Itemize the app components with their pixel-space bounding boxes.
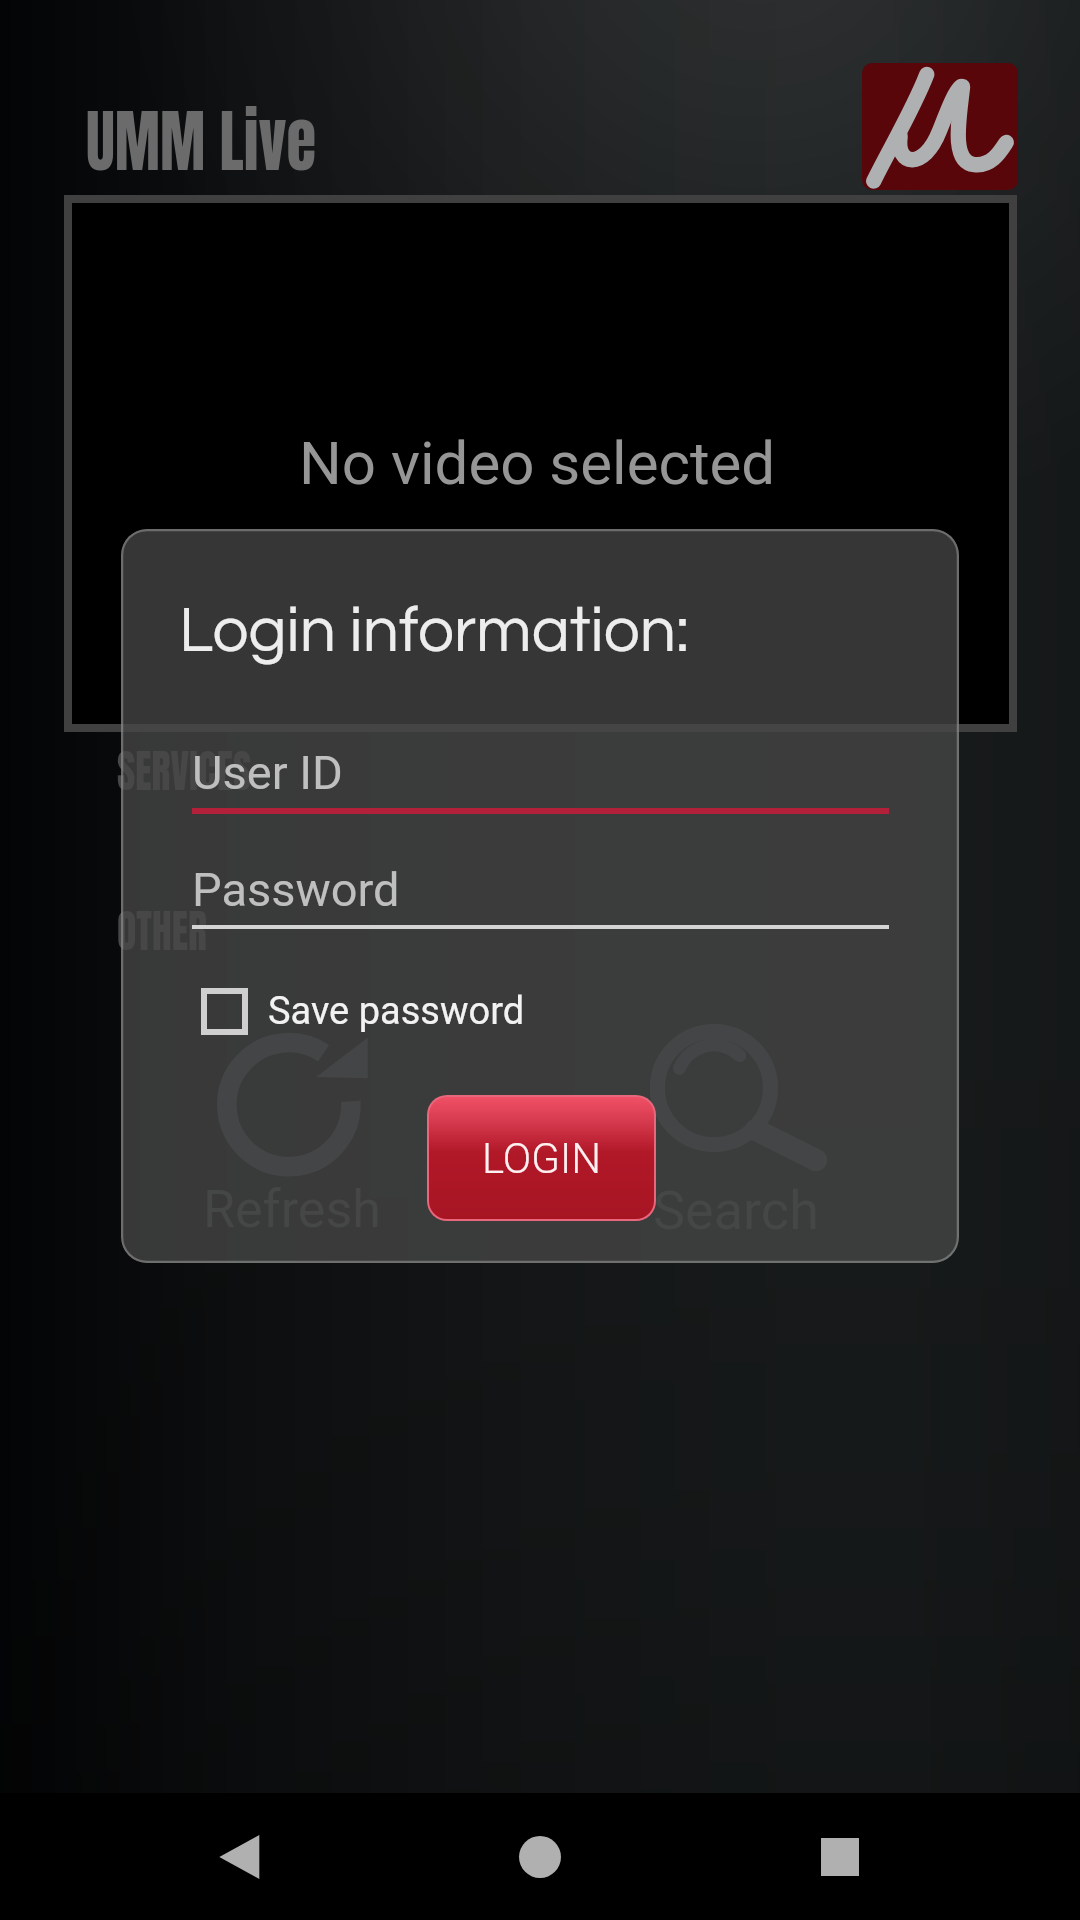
staticText: No video selected [299, 428, 776, 498]
button[interactable]: No video selected [72, 203, 1009, 724]
button[interactable]: Search [586, 1012, 886, 1227]
staticText: Password [192, 862, 400, 917]
staticText: Login information: [179, 599, 690, 665]
button[interactable]: Back [180, 1797, 300, 1917]
button[interactable]: Save password [201, 981, 525, 1041]
staticText: Refresh [203, 1179, 381, 1240]
button[interactable]: App logo [862, 63, 1018, 190]
button[interactable]: Home [480, 1797, 600, 1917]
staticText: User ID [192, 745, 343, 800]
staticText: Search [653, 1179, 819, 1242]
button[interactable]: Recent apps [780, 1797, 900, 1917]
staticText: UMM Live [86, 89, 317, 193]
staticText: Save password [268, 989, 525, 1034]
button[interactable]: Refresh [142, 1020, 442, 1235]
button[interactable]: LOGIN [429, 1097, 654, 1219]
staticText: OTHER [117, 896, 207, 965]
staticText: LOGIN [482, 1134, 602, 1183]
staticText: SERVICES [117, 736, 252, 805]
